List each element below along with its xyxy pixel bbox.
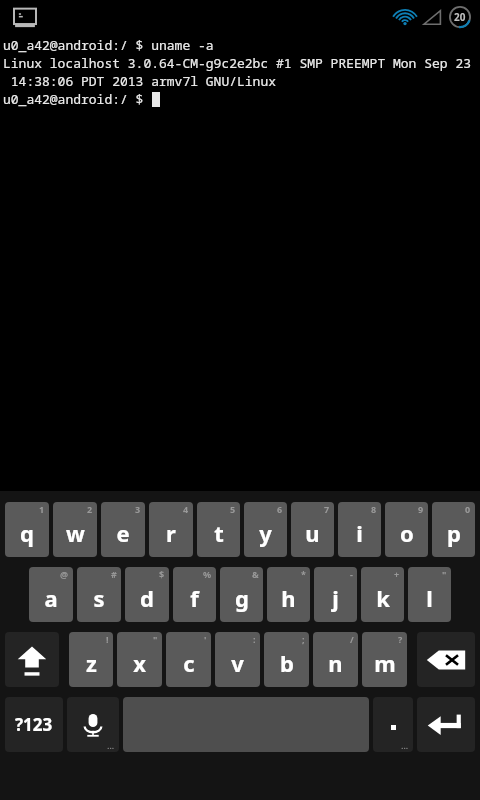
staticText: ... bbox=[401, 739, 409, 751]
button[interactable]: @ bbox=[29, 567, 73, 622]
staticText: " bbox=[442, 568, 447, 580]
button[interactable]: ' bbox=[166, 632, 211, 687]
button[interactable]: * bbox=[267, 567, 310, 622]
button[interactable]: Voice input bbox=[67, 697, 119, 752]
staticText: x bbox=[133, 648, 146, 678]
staticText: # bbox=[111, 568, 117, 580]
staticText: v bbox=[231, 648, 244, 678]
staticText: w bbox=[66, 518, 85, 548]
staticText: 2 bbox=[87, 503, 93, 515]
staticText: + bbox=[394, 568, 400, 580]
staticText: o bbox=[400, 518, 414, 548]
staticText: - bbox=[350, 568, 353, 580]
staticText: q bbox=[20, 518, 34, 548]
staticText: 8 bbox=[371, 503, 377, 515]
staticText: l bbox=[426, 583, 433, 613]
button[interactable]: ; bbox=[264, 632, 309, 687]
button[interactable]: ? bbox=[362, 632, 407, 687]
staticText: 20 bbox=[454, 10, 466, 24]
button[interactable]: ?123 bbox=[5, 697, 63, 752]
staticText: j bbox=[332, 583, 339, 613]
staticText: m bbox=[374, 648, 396, 678]
staticText: y bbox=[259, 518, 272, 548]
staticText: Linux localhost 3.0.64-CM-g9c2e2bc #1 SM… bbox=[3, 54, 471, 72]
button[interactable]: / bbox=[313, 632, 358, 687]
staticText: " bbox=[153, 633, 158, 645]
button[interactable]: 2 bbox=[53, 502, 97, 557]
staticText: : bbox=[253, 633, 256, 645]
staticText: h bbox=[281, 583, 296, 613]
staticText: r bbox=[166, 518, 176, 548]
button[interactable]: Backspace bbox=[417, 632, 475, 687]
staticText: 5 bbox=[230, 503, 236, 515]
staticText: i bbox=[356, 518, 363, 548]
staticText: k bbox=[376, 583, 390, 613]
button[interactable]: & bbox=[220, 567, 263, 622]
staticText: 4 bbox=[183, 503, 189, 515]
button[interactable]: 7 bbox=[291, 502, 334, 557]
button[interactable]: : bbox=[215, 632, 260, 687]
button[interactable]: Shift bbox=[5, 632, 59, 687]
staticText: c bbox=[183, 648, 195, 678]
staticText: f bbox=[190, 583, 199, 613]
staticText: 7 bbox=[324, 503, 330, 515]
staticText: a bbox=[44, 583, 58, 613]
button[interactable]: $ bbox=[125, 567, 169, 622]
staticText: 14:38:06 PDT 2013 armv7l GNU/Linux bbox=[3, 72, 277, 90]
button[interactable]: 1 bbox=[5, 502, 49, 557]
staticText: / bbox=[350, 633, 354, 645]
staticText: d bbox=[140, 583, 154, 613]
button[interactable]: # bbox=[77, 567, 121, 622]
staticText: n bbox=[328, 648, 343, 678]
staticText: p bbox=[447, 518, 461, 548]
button[interactable]: ... bbox=[373, 697, 413, 752]
staticText: t bbox=[214, 518, 224, 548]
staticText: s bbox=[93, 583, 105, 613]
staticText: e bbox=[116, 518, 130, 548]
staticText: 1 bbox=[39, 503, 45, 515]
staticText: $ bbox=[159, 568, 165, 580]
staticText: @ bbox=[60, 568, 69, 580]
staticText: u0_a42@android:/ $ uname -a bbox=[3, 36, 214, 54]
staticText: * bbox=[301, 568, 306, 580]
staticText: z bbox=[86, 648, 97, 678]
button[interactable]: 0 bbox=[432, 502, 475, 557]
staticText: 9 bbox=[418, 503, 424, 515]
button[interactable]: 6 bbox=[244, 502, 287, 557]
staticText: ... bbox=[107, 739, 115, 751]
button[interactable]: " bbox=[117, 632, 162, 687]
button[interactable]: 9 bbox=[385, 502, 428, 557]
staticText: % bbox=[203, 568, 212, 580]
button[interactable]: + bbox=[361, 567, 404, 622]
staticText: 3 bbox=[135, 503, 141, 515]
button[interactable]: 3 bbox=[101, 502, 145, 557]
button[interactable]: 4 bbox=[149, 502, 193, 557]
staticText: u0_a42@android:/ $ bbox=[3, 90, 152, 108]
staticText: u bbox=[305, 518, 320, 548]
staticText: ? bbox=[398, 633, 403, 645]
button[interactable]: % bbox=[173, 567, 216, 622]
staticText: ?123 bbox=[15, 713, 53, 736]
staticText: & bbox=[252, 568, 259, 580]
button[interactable]: " bbox=[408, 567, 451, 622]
staticText: 0 bbox=[465, 503, 471, 515]
staticText: ! bbox=[106, 633, 109, 645]
staticText: g bbox=[235, 583, 249, 613]
button[interactable]: ! bbox=[69, 632, 113, 687]
staticText: ; bbox=[302, 633, 305, 645]
button[interactable]: Enter bbox=[417, 697, 475, 752]
staticText: ' bbox=[204, 633, 207, 645]
button[interactable]: 5 bbox=[197, 502, 240, 557]
button[interactable]: 8 bbox=[338, 502, 381, 557]
staticText: 6 bbox=[277, 503, 283, 515]
staticText: b bbox=[280, 648, 294, 678]
button[interactable]: - bbox=[314, 567, 357, 622]
